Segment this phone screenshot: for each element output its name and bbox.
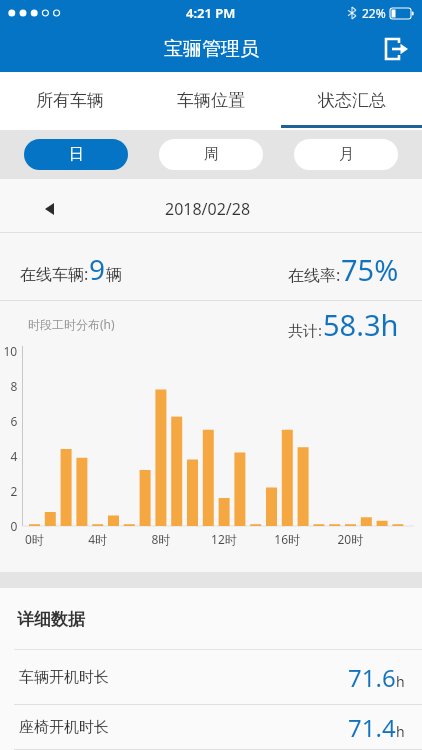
staticText: 状态汇总	[318, 90, 386, 111]
button[interactable]: 周	[159, 139, 263, 170]
staticText: 时段工时分布(h)	[28, 316, 115, 332]
staticText: 4:21 PM	[186, 4, 236, 22]
button[interactable]	[45, 203, 54, 215]
button[interactable]: 月	[294, 139, 398, 170]
staticText: 辆	[106, 265, 122, 285]
staticText: 75%	[341, 250, 399, 289]
staticText: 共计:	[288, 320, 323, 340]
button[interactable]: 车辆开机时长	[0, 650, 422, 705]
staticText: 71.6	[348, 661, 396, 694]
staticText: 58.3h	[323, 305, 399, 341]
staticText: 在线率:	[288, 264, 341, 286]
button[interactable]: 状态汇总	[281, 72, 422, 128]
staticText: 在线车辆:	[20, 263, 89, 285]
button[interactable]: 所有车辆	[0, 72, 140, 128]
button[interactable]	[382, 35, 410, 63]
staticText: 22%	[362, 5, 386, 21]
staticText: 周	[204, 145, 219, 164]
button[interactable]: 车辆位置	[140, 72, 281, 128]
button[interactable]: 日	[24, 139, 128, 170]
staticText: 9	[89, 250, 106, 288]
staticText: 车辆开机时长	[19, 668, 109, 687]
staticText: 2018/02/28	[165, 198, 251, 220]
staticText: 所有车辆	[36, 90, 104, 111]
staticText: h	[396, 672, 405, 691]
staticText: h	[396, 722, 405, 741]
staticText: 月	[339, 145, 354, 164]
staticText: 宝骊管理员	[164, 37, 259, 61]
staticText: 车辆位置	[177, 90, 245, 111]
staticText: 日	[69, 145, 84, 164]
staticText: 座椅开机时长	[19, 718, 109, 737]
button[interactable]: 座椅开机时长	[0, 705, 422, 750]
staticText: 71.4	[348, 711, 396, 744]
staticText: 详细数据	[17, 609, 85, 630]
